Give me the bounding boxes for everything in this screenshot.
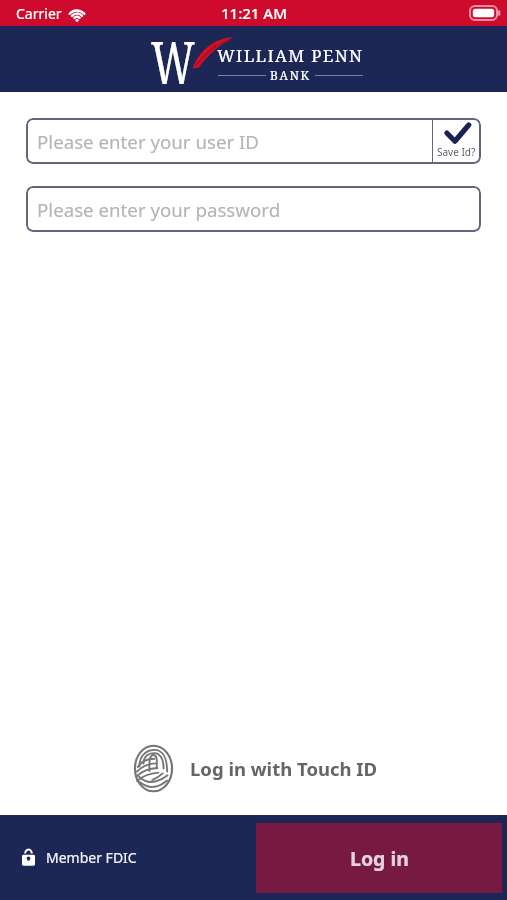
button[interactable]: Log in [256,823,502,893]
button[interactable]: Please enter your user ID [26,118,432,164]
staticText: Log in with Touch ID [190,756,378,781]
staticText: Member FDIC [46,848,137,867]
button[interactable]: Save Id [432,118,481,164]
staticText: Please enter your password [37,197,281,222]
staticText: 11:21 AM [221,3,287,23]
staticText: BANK [270,67,311,83]
staticText: Please enter your user ID [37,129,260,154]
staticText: Save Id? [437,145,476,159]
staticText: W [151,21,195,87]
button[interactable]: Please enter your password [26,186,481,232]
button[interactable]: Member FDIC [22,848,137,867]
staticText: WILLIAM PENN [217,44,364,67]
staticText: Carrier [16,4,62,23]
staticText: Log in [350,845,409,872]
button[interactable]: Log in with Touch ID [130,744,378,793]
